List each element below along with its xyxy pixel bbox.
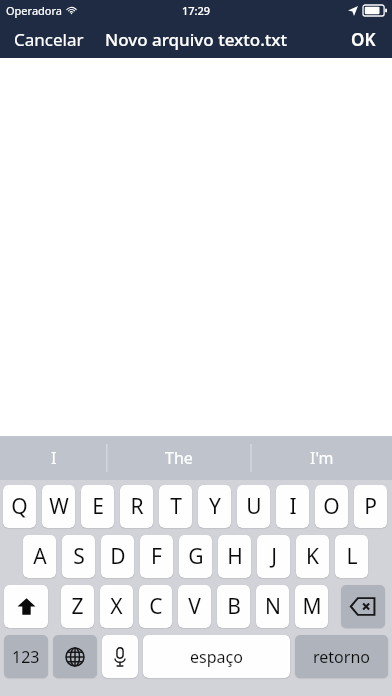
button[interactable]: The [107, 436, 251, 480]
button[interactable]: F [140, 535, 173, 578]
staticText: retorno [313, 646, 370, 668]
staticText: E [92, 492, 104, 521]
staticText: 123 [12, 646, 40, 668]
button[interactable]: 123 [4, 635, 48, 678]
button[interactable]: C [139, 585, 172, 628]
staticText: 17:29 [182, 3, 211, 18]
button[interactable]: O [315, 485, 348, 528]
staticText: espaço [190, 646, 243, 668]
button[interactable]: A [23, 535, 56, 578]
button[interactable]: M [295, 585, 328, 628]
staticText: D [110, 542, 126, 571]
button[interactable]: W [42, 485, 75, 528]
staticText: Cancelar [14, 28, 84, 51]
staticText: H [227, 542, 243, 571]
button[interactable]: Shift [4, 585, 48, 628]
button[interactable]: J [257, 535, 290, 578]
staticText: A [33, 542, 47, 571]
button[interactable]: I [0, 436, 107, 480]
button[interactable]: V [178, 585, 211, 628]
staticText: L [346, 542, 358, 571]
button[interactable]: S [62, 535, 95, 578]
button[interactable]: Backspace [341, 585, 385, 628]
staticText: N [265, 592, 281, 621]
button[interactable]: H [218, 535, 251, 578]
button[interactable]: U [237, 485, 270, 528]
staticText: W [49, 492, 69, 521]
button[interactable]: Dictation [102, 635, 138, 678]
button[interactable]: Z [61, 585, 94, 628]
button[interactable]: E [81, 485, 114, 528]
button[interactable]: Cancelar [0, 20, 98, 58]
staticText: P [364, 492, 377, 521]
staticText: T [170, 492, 182, 521]
staticText: B [227, 592, 241, 621]
staticText: F [151, 542, 162, 571]
staticText: K [306, 542, 319, 571]
button[interactable]: Change keyboard language [53, 635, 97, 678]
staticText: V [188, 592, 201, 621]
button[interactable]: L [335, 535, 368, 578]
staticText: Z [71, 592, 84, 621]
staticText: C [149, 592, 163, 621]
staticText: I [51, 447, 57, 469]
button[interactable]: T [159, 485, 192, 528]
button[interactable]: G [179, 535, 212, 578]
button[interactable]: I [276, 485, 309, 528]
button[interactable]: espaço [143, 635, 290, 678]
staticText: X [110, 592, 123, 621]
staticText: OK [351, 28, 376, 51]
button[interactable]: Q [3, 485, 36, 528]
button[interactable]: B [217, 585, 250, 628]
staticText: U [246, 492, 262, 521]
button[interactable]: P [354, 485, 387, 528]
staticText: Operadora [6, 3, 62, 18]
staticText: G [188, 542, 204, 571]
staticText: O [323, 492, 340, 521]
staticText: S [73, 542, 85, 571]
staticText: The [165, 447, 193, 469]
button[interactable]: I'm [251, 436, 392, 480]
button[interactable]: R [120, 485, 153, 528]
button[interactable]: OK [335, 20, 392, 58]
button[interactable]: retorno [295, 635, 388, 678]
button[interactable]: Y [198, 485, 231, 528]
staticText: Novo arquivo texto.txt [105, 28, 288, 51]
staticText: Q [11, 492, 28, 521]
staticText: J [271, 542, 277, 571]
staticText: M [302, 592, 322, 621]
button[interactable]: N [256, 585, 289, 628]
button[interactable]: K [296, 535, 329, 578]
staticText: I'm [310, 447, 334, 469]
staticText: Y [209, 492, 221, 521]
staticText: I [289, 492, 297, 521]
staticText: R [130, 492, 144, 521]
button[interactable]: X [100, 585, 133, 628]
button[interactable]: D [101, 535, 134, 578]
